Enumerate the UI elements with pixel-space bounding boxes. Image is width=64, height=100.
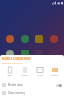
staticText: Data roaming <box>8 91 25 95</box>
button[interactable]: App <box>50 35 58 43</box>
button[interactable]: App <box>6 35 14 43</box>
staticText: Usage <box>21 74 28 77</box>
staticText: Bills <box>7 74 12 77</box>
button[interactable]: Data roaming <box>0 89 64 97</box>
button[interactable]: Offers <box>49 67 60 77</box>
button[interactable]: Mobile data <box>0 81 64 89</box>
staticText: Manage your plan <box>2 61 23 64</box>
button[interactable]: App <box>21 35 29 43</box>
button[interactable]: Plans <box>34 67 45 77</box>
staticText: Mobile data <box>8 83 23 87</box>
staticText: MOBILE CONNECTION <box>2 57 31 61</box>
button[interactable]: Usage <box>19 67 30 77</box>
staticText: Plans <box>37 74 43 77</box>
button[interactable]: Bills <box>4 67 15 77</box>
staticText: Offers <box>51 74 58 77</box>
button[interactable]: App <box>35 35 43 43</box>
